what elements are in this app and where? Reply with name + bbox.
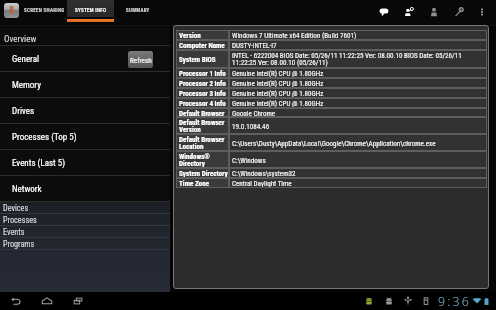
button[interactable]: Computer Name (176, 40, 487, 50)
button[interactable]: Devices (0, 202, 170, 214)
staticText: Genuine Intel(R) CPU @ 1.80GHz (232, 89, 324, 97)
staticText: Network (12, 184, 42, 195)
staticText: C:\Users\Dusty\AppData\Local\Google\Chro… (232, 139, 436, 147)
button[interactable]: Processor 3 Info (176, 88, 487, 98)
staticText: Default Browser Location (179, 135, 228, 151)
staticText: Devices (3, 203, 29, 213)
staticText: Computer Name (179, 41, 225, 49)
button[interactable]: System BIOS (176, 50, 487, 68)
button[interactable]: SCREEN SHARING (17, 0, 70, 26)
button[interactable]: Default Browser (176, 108, 487, 117)
button[interactable]: Processor 2 Info (176, 78, 487, 88)
staticText: Processor 1 Info (179, 69, 226, 77)
staticText: SCREEN SHARING (24, 7, 65, 13)
staticText: Memory (12, 80, 41, 91)
button[interactable]: Account (423, 0, 445, 26)
staticText: System Directory (179, 169, 228, 177)
button[interactable]: Default Browser Location (176, 134, 487, 151)
button[interactable]: Windows® Directory (176, 151, 487, 168)
staticText: Default Browser Version (179, 118, 228, 134)
staticText: Events (3, 227, 25, 237)
button[interactable]: Processor 4 Info (176, 98, 487, 108)
button[interactable]: System Directory (176, 168, 487, 178)
staticText: Windows 7 Ultimate x64 Edition (Build 76… (232, 31, 357, 39)
staticText: 9:36 (438, 293, 472, 310)
button[interactable]: Drives (0, 98, 170, 124)
button[interactable]: App logo (4, 3, 19, 18)
staticText: Processor 3 Info (179, 89, 226, 97)
button[interactable]: Memory (0, 72, 170, 98)
staticText: Processor 4 Info (179, 99, 226, 107)
button[interactable]: Events (Last 5) (0, 150, 170, 176)
staticText: Genuine Intel(R) CPU @ 1.80GHz (232, 79, 324, 87)
button[interactable]: Network (0, 176, 170, 202)
staticText: SYSTEM INFO (75, 7, 107, 13)
button[interactable]: Recent apps (67, 292, 89, 310)
button[interactable]: Version (176, 30, 487, 40)
staticText: C:\Windows (232, 156, 266, 164)
staticText: General (12, 54, 40, 65)
staticText: C:\Windows\system32 (232, 169, 296, 177)
button[interactable]: Events (0, 226, 170, 238)
staticText: Processes (Top 5) (12, 132, 77, 143)
staticText: Programs (3, 239, 35, 249)
staticText: SUMMARY (126, 7, 150, 13)
staticText: Overview (4, 34, 37, 45)
button[interactable]: Invite participant (398, 0, 420, 26)
button[interactable]: Processes (Top 5) (0, 124, 170, 150)
button[interactable]: SUMMARY (119, 0, 156, 26)
staticText: Google Chrome (232, 109, 276, 117)
staticText: Version (179, 31, 201, 39)
staticText: Genuine Intel(R) CPU @ 1.80GHz (232, 69, 324, 77)
button[interactable]: Tools (448, 0, 470, 26)
staticText: INTEL - 6222004 BIOS Date: 05/26/11 11:2… (232, 51, 486, 67)
staticText: Windows® Directory (179, 152, 228, 168)
button[interactable]: Processor 1 Info (176, 68, 487, 78)
button[interactable]: Back (5, 292, 27, 310)
staticText: DUSTY-INTEL-I7 (232, 41, 277, 49)
button[interactable]: More options (471, 0, 493, 26)
button[interactable]: Processes (0, 214, 170, 226)
staticText: Events (Last 5) (12, 158, 66, 169)
staticText: Central Daylight Time (232, 179, 292, 187)
staticText: Default Browser (179, 109, 225, 117)
staticText: 8 (9, 5, 15, 17)
staticText: Time Zone (179, 179, 210, 187)
staticText: Drives (12, 106, 35, 117)
button[interactable]: Time Zone (176, 178, 487, 188)
button[interactable]: Chat (373, 0, 395, 26)
staticText: Processes (3, 215, 37, 225)
button[interactable]: Home (36, 292, 58, 310)
staticText: 19.0.1084.46 (232, 122, 270, 130)
staticText: Genuine Intel(R) CPU @ 1.80GHz (232, 99, 324, 107)
button[interactable]: SYSTEM INFO (67, 0, 114, 26)
staticText: Refresh (130, 56, 152, 64)
staticText: Processor 2 Info (179, 79, 226, 87)
button[interactable]: Programs (0, 238, 170, 250)
button[interactable]: General (0, 46, 170, 72)
staticText: System BIOS (179, 55, 216, 63)
button[interactable]: Default Browser Version (176, 117, 487, 134)
button[interactable]: Refresh (128, 51, 153, 68)
